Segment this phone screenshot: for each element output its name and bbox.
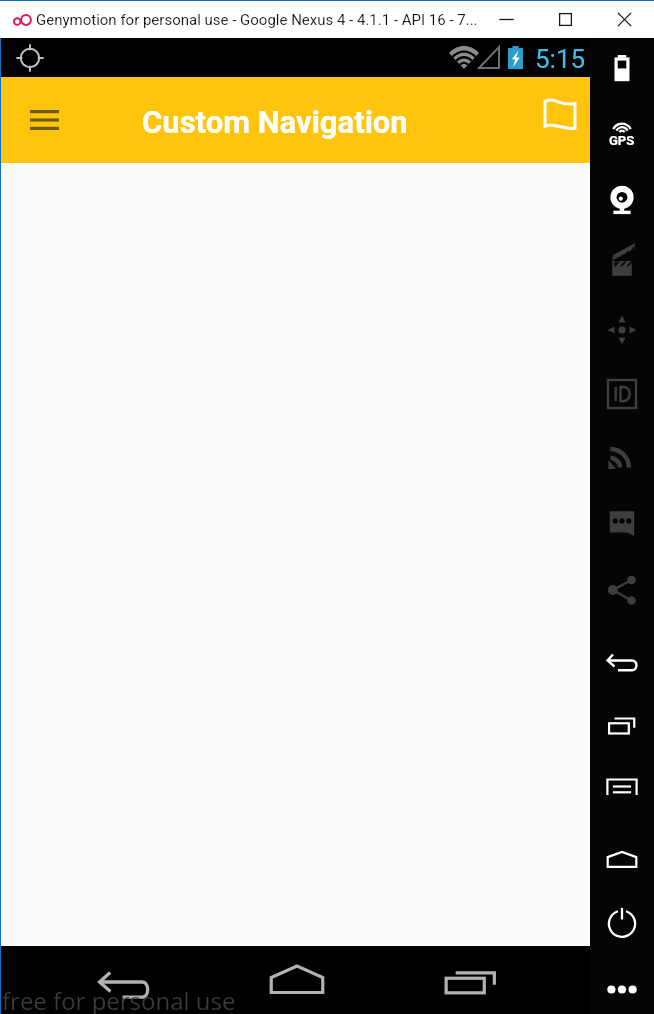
button[interactable]: Back (89, 963, 160, 1003)
button[interactable]: Network (591, 424, 653, 488)
button[interactable]: Identifiers (591, 362, 653, 426)
button[interactable]: More options (591, 956, 653, 1014)
button[interactable]: Close (595, 1, 654, 38)
button[interactable]: Back (591, 631, 653, 695)
button[interactable]: Battery (591, 36, 653, 100)
button[interactable]: Open navigation drawer (19, 95, 69, 145)
button[interactable]: Home (261, 961, 332, 997)
button[interactable]: Power (591, 891, 653, 955)
button[interactable]: Messages (591, 486, 653, 550)
button[interactable]: Home (591, 827, 653, 891)
button[interactable]: Virtual sensors (591, 298, 653, 362)
button[interactable]: Camera (591, 164, 653, 228)
staticText: Custom Navigation (142, 104, 408, 140)
button[interactable]: Minimize (477, 1, 536, 38)
staticText: GPS (609, 133, 635, 148)
button[interactable]: Share (591, 558, 653, 622)
staticText: Genymotion for personal use - Google Nex… (36, 11, 478, 29)
button[interactable]: Menu (591, 755, 653, 819)
button[interactable]: Record screen (591, 227, 653, 291)
button[interactable]: GPS (591, 98, 653, 162)
button[interactable]: Recent apps (591, 694, 653, 758)
button[interactable]: Flag (533, 93, 585, 137)
button[interactable]: Maximize (536, 1, 595, 38)
button[interactable]: Recent apps (435, 963, 506, 999)
staticText: free for personal use (2, 984, 236, 1014)
staticText: 5:15 (535, 44, 586, 74)
